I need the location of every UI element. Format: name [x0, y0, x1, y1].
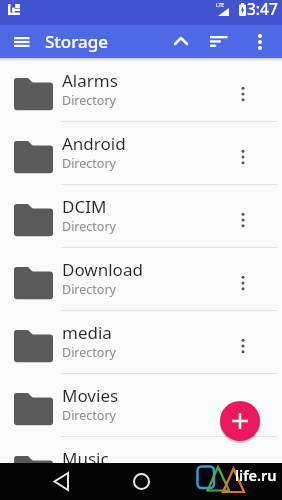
- button[interactable]: DCIM: [0, 185, 282, 248]
- staticText: Alarms: [62, 69, 118, 91]
- staticText: Storage: [45, 30, 109, 53]
- staticText: Directory: [62, 470, 116, 486]
- staticText: 3:47: [247, 0, 278, 19]
- button[interactable]: [231, 271, 255, 295]
- button[interactable]: Alarms: [0, 59, 282, 122]
- staticText: Directory: [62, 407, 116, 423]
- button[interactable]: [246, 25, 274, 58]
- staticText: Directory: [62, 92, 116, 108]
- staticText: Directory: [62, 218, 116, 234]
- button[interactable]: [220, 401, 260, 441]
- staticText: Movies: [62, 384, 119, 406]
- button[interactable]: [125, 463, 157, 500]
- staticText: life.ru: [235, 465, 277, 483]
- staticText: Music: [62, 447, 109, 469]
- staticText: DCIM: [62, 195, 107, 217]
- button[interactable]: Music: [0, 437, 282, 500]
- staticText: Directory: [62, 344, 116, 360]
- button[interactable]: [231, 82, 255, 106]
- button[interactable]: [231, 208, 255, 232]
- button[interactable]: [165, 25, 197, 58]
- button[interactable]: [231, 334, 255, 358]
- staticText: LTE: [216, 2, 225, 9]
- button[interactable]: Download: [0, 248, 282, 311]
- button[interactable]: [231, 460, 255, 484]
- staticText: Directory: [62, 155, 116, 171]
- button[interactable]: [45, 463, 77, 500]
- button[interactable]: media: [0, 311, 282, 374]
- button[interactable]: [231, 145, 255, 169]
- staticText: Download: [62, 258, 143, 280]
- button[interactable]: Movies: [0, 374, 282, 437]
- button[interactable]: [231, 397, 255, 421]
- button[interactable]: Android: [0, 122, 282, 185]
- staticText: Android: [62, 132, 126, 154]
- button[interactable]: [6, 25, 38, 58]
- staticText: Directory: [62, 281, 116, 297]
- button[interactable]: [203, 25, 235, 58]
- staticText: media: [62, 321, 112, 343]
